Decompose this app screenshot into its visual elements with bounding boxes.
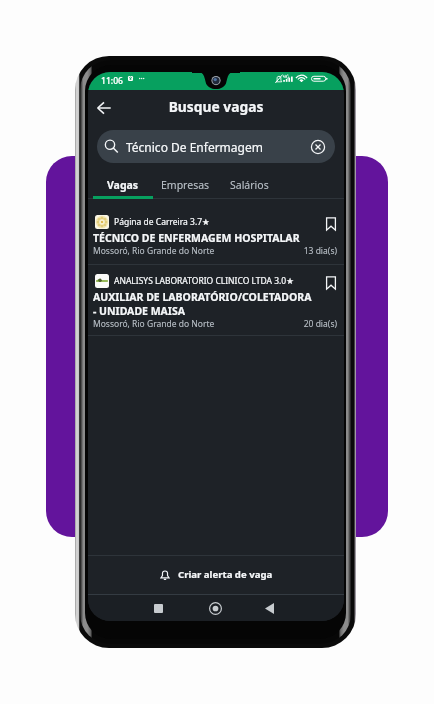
staticText: 13 dia(s) — [88, 245, 337, 257]
button[interactable]: Voltar — [92, 96, 116, 120]
button[interactable]: Salários — [219, 174, 279, 196]
staticText: TÉCNICO DE ENFERMAGEM HOSPITALAR — [93, 231, 300, 245]
button[interactable]: Limpar busca — [309, 138, 327, 156]
staticText: Mossoró, Rio Grande do Norte — [93, 318, 215, 330]
staticText: AUXILIAR DE LABORATÓRIO/COLETADORA — [93, 290, 312, 304]
button[interactable]: ANALISYS LABORATORIO CLINICO LTDA 3.0★ — [88, 266, 344, 335]
button[interactable]: Início — [203, 595, 228, 621]
staticText: Vagas — [107, 178, 139, 192]
staticText: Salários — [230, 178, 269, 192]
button[interactable]: Recentes — [146, 595, 171, 621]
button[interactable]: Salvar vaga — [323, 215, 339, 233]
button[interactable]: Empresas — [155, 174, 215, 196]
staticText: Página de Carreira 3.7★ — [114, 216, 210, 228]
staticText: Empresas — [161, 178, 210, 192]
staticText: - UNIDADE MAISA — [93, 304, 185, 318]
staticText: 11:06 — [101, 75, 124, 87]
staticText: Busque vagas — [88, 97, 344, 116]
staticText: 20 dia(s) — [88, 318, 337, 330]
staticText: Criar alerta de vaga — [178, 568, 273, 581]
button[interactable]: Vagas — [93, 174, 153, 196]
button[interactable]: Voltar — [257, 595, 282, 621]
button[interactable]: Criar alerta de vaga — [88, 556, 344, 593]
staticText: ANALISYS LABORATORIO CLINICO LTDA 3.0★ — [114, 275, 294, 287]
staticText: Técnico De Enfermagem — [126, 139, 263, 155]
staticText: Mossoró, Rio Grande do Norte — [93, 245, 215, 257]
button[interactable]: Página de Carreira 3.7★ — [88, 207, 344, 266]
button[interactable]: Salvar vaga — [323, 274, 339, 292]
button[interactable]: Técnico De Enfermagem — [97, 130, 335, 163]
